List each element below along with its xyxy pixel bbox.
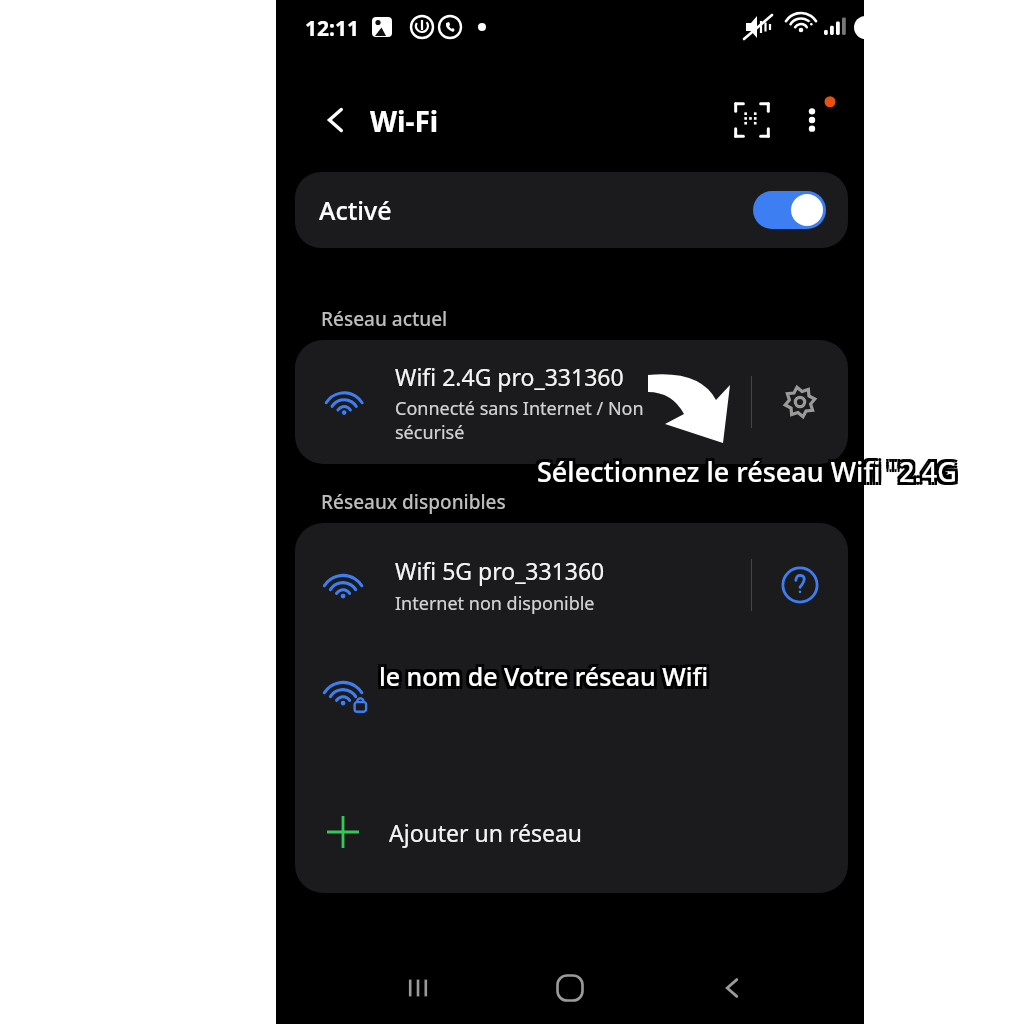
button[interactable]: Wifi 2.4G pro_331360 — [295, 340, 751, 464]
staticText: Sélectionnez le réseau Wifi "2.4G — [537, 456, 957, 493]
staticText: Sélectionnez le réseau Wifi "2.4G — [540, 450, 960, 487]
button[interactable]: More options — [788, 96, 836, 144]
staticText: Réseau actuel — [321, 306, 448, 332]
staticText: Wi-Fi — [370, 102, 439, 140]
button[interactable]: Network settings — [752, 340, 848, 464]
button[interactable]: Scan QR code — [728, 96, 776, 144]
button[interactable]: Ajouter un réseau — [295, 787, 848, 877]
staticText: le nom de Votre réseau Wifi — [376, 656, 706, 690]
staticText: le nom de Votre réseau Wifi — [376, 662, 706, 696]
staticText: le nom de Votre réseau Wifi — [379, 656, 709, 690]
staticText: le nom de Votre réseau Wifi — [382, 656, 712, 690]
button[interactable]: Back — [314, 98, 358, 142]
button[interactable]: Network information — [752, 537, 848, 633]
button[interactable]: Activé — [295, 172, 848, 248]
staticText: le nom de Votre réseau Wifi — [376, 659, 706, 693]
staticText: Sélectionnez le réseau Wifi "2.4G — [534, 453, 954, 490]
staticText: Sélectionnez le réseau Wifi "2.4G — [534, 450, 954, 487]
staticText: Wifi 5G pro_331360 — [395, 555, 605, 586]
staticText: Connecté sans Internet / Non sécurisé — [395, 396, 644, 444]
staticText: Wifi 2.4G pro_331360 — [395, 361, 624, 392]
button[interactable]: Wifi 5G pro_331360 — [295, 537, 751, 633]
staticText: le nom de Votre réseau Wifi — [379, 659, 709, 693]
staticText: 91 — [807, 16, 826, 38]
staticText: Sélectionnez le réseau Wifi "2.4G — [537, 453, 957, 490]
button[interactable] — [295, 643, 848, 733]
staticText: Sélectionnez le réseau Wifi "2.4G — [534, 456, 954, 493]
staticText: Internet non disponible — [395, 591, 595, 616]
staticText: Sélectionnez le réseau Wifi "2.4G — [540, 453, 960, 490]
staticText: le nom de Votre réseau Wifi — [382, 659, 712, 693]
button[interactable]: Recent apps — [378, 952, 458, 1024]
staticText: Réseaux disponibles — [321, 489, 506, 515]
staticText: Sélectionnez le réseau Wifi "2.4G — [537, 450, 957, 487]
staticText: le nom de Votre réseau Wifi — [382, 662, 712, 696]
staticText: le nom de Votre réseau Wifi — [379, 662, 709, 696]
staticText: Activé — [319, 193, 392, 227]
button[interactable]: Home — [530, 952, 610, 1024]
button[interactable]: Back — [692, 952, 772, 1024]
staticText: Sélectionnez le réseau Wifi "2.4G — [540, 456, 960, 493]
staticText: Ajouter un réseau — [389, 817, 583, 848]
staticText: 12:11 — [305, 14, 359, 43]
